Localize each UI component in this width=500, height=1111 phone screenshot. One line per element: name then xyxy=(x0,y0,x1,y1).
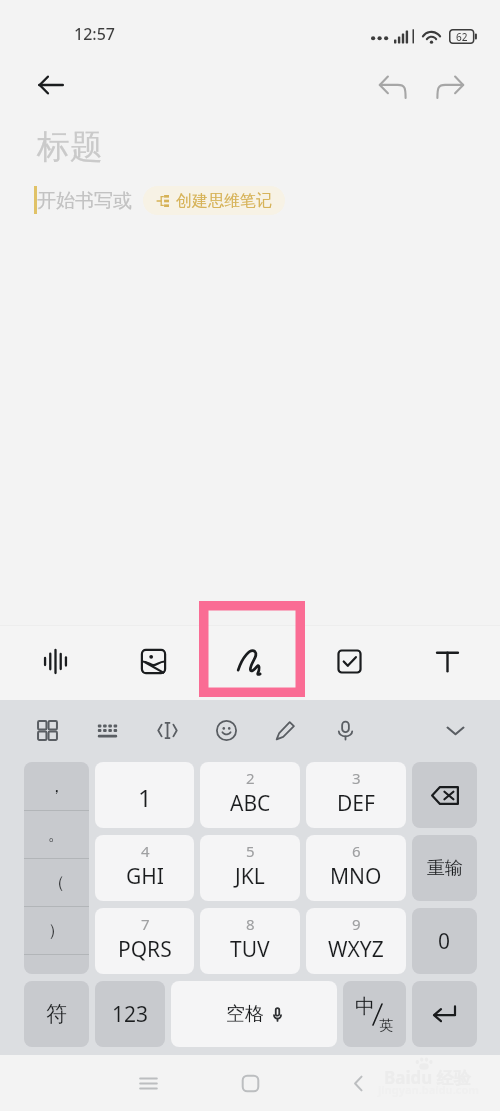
staticText: 符 xyxy=(46,1001,67,1027)
button[interactable]: Redo xyxy=(428,65,472,109)
button[interactable]: Backspace xyxy=(412,762,477,828)
staticText: Baidu 经验 xyxy=(384,1066,471,1089)
button[interactable]: 8 xyxy=(200,908,300,974)
button[interactable]: ， xyxy=(24,762,89,810)
button[interactable]: Keyboard layouts xyxy=(28,711,66,749)
button[interactable]: 5 xyxy=(200,835,300,901)
button[interactable]: Voice note xyxy=(28,634,82,688)
staticText: 5 xyxy=(246,841,255,861)
staticText: 0 xyxy=(438,927,451,956)
button[interactable]: 2 xyxy=(200,762,300,828)
button[interactable]: 6 xyxy=(306,835,406,901)
button[interactable]: 4 xyxy=(95,835,194,901)
button[interactable]: 9 xyxy=(306,908,406,974)
staticText: 62 xyxy=(456,30,468,44)
button[interactable]: Hide keyboard xyxy=(436,711,474,749)
button[interactable]: Handwriting xyxy=(224,634,278,688)
staticText: 7 xyxy=(141,914,150,934)
button[interactable]: Back xyxy=(27,61,75,109)
staticText: JKL xyxy=(235,862,265,891)
staticText: DEF xyxy=(337,789,375,818)
button[interactable]: 7 xyxy=(95,908,194,974)
button[interactable]: Text format xyxy=(420,634,474,688)
staticText: 开始书写或 xyxy=(37,189,132,213)
button[interactable]: Home xyxy=(227,1060,273,1106)
button[interactable]: Switch Chinese English xyxy=(343,981,406,1047)
staticText: 。 xyxy=(48,824,65,845)
button[interactable]: 重输 xyxy=(412,835,477,901)
staticText: PQRS xyxy=(118,935,172,964)
button[interactable]: Checklist xyxy=(322,634,376,688)
button[interactable]: Move cursor xyxy=(148,711,186,749)
button[interactable]: 创建思维笔记 xyxy=(143,186,285,215)
staticText: 123 xyxy=(112,1000,149,1029)
staticText: ABC xyxy=(230,789,271,818)
staticText: ， xyxy=(48,776,65,797)
staticText: 英 xyxy=(379,1017,393,1035)
staticText: （ xyxy=(48,872,65,893)
button[interactable]: （ xyxy=(24,859,89,906)
staticText: 1 xyxy=(138,781,152,814)
staticText: 标题 xyxy=(37,126,103,168)
staticText: GHI xyxy=(126,862,164,891)
staticText: 8 xyxy=(246,914,255,934)
staticText: 创建思维笔记 xyxy=(176,191,272,211)
staticText: 4 xyxy=(141,841,150,861)
button[interactable]: 123 xyxy=(95,981,165,1047)
button[interactable]: Handwriting input xyxy=(266,711,304,749)
staticText: TUV xyxy=(230,935,270,964)
staticText: ） xyxy=(48,920,65,941)
button[interactable]: Recent apps xyxy=(125,1060,171,1106)
staticText: 重输 xyxy=(427,857,463,880)
button[interactable]: Voice input xyxy=(326,711,364,749)
button[interactable]: 符 xyxy=(24,981,89,1047)
button[interactable]: 3 xyxy=(306,762,406,828)
staticText: 3 xyxy=(352,768,361,788)
staticText: 空格 xyxy=(226,1002,264,1026)
button[interactable]: Undo xyxy=(371,65,415,109)
button[interactable]: 。 xyxy=(24,811,89,858)
button[interactable]: ） xyxy=(24,907,89,954)
button[interactable]: Insert image xyxy=(126,634,180,688)
staticText: 中 xyxy=(355,994,375,1019)
button[interactable]: 1 xyxy=(95,762,194,828)
button[interactable]: Emoji xyxy=(207,711,245,749)
button[interactable]: 空格 xyxy=(171,981,337,1047)
staticText: 12:57 xyxy=(74,23,115,45)
staticText: 9 xyxy=(352,914,361,934)
staticText: MNO xyxy=(330,862,382,891)
button[interactable]: Back xyxy=(335,1060,381,1106)
staticText: 6 xyxy=(352,841,361,861)
staticText: WXYZ xyxy=(328,935,384,964)
staticText: 2 xyxy=(246,768,255,788)
button[interactable]: 0 xyxy=(412,908,477,974)
button[interactable]: Keyboard settings xyxy=(88,711,126,749)
button[interactable]: Enter xyxy=(412,981,477,1047)
